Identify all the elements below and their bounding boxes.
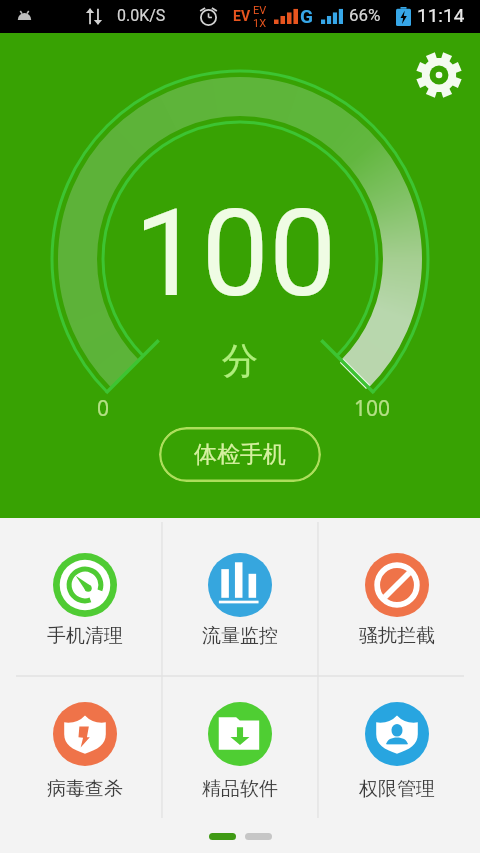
staticText: 流量监控 (202, 624, 278, 648)
staticText: EV (253, 4, 267, 17)
staticText: 分 (222, 338, 258, 383)
staticText: EV (233, 8, 251, 24)
staticText: 骚扰拦截 (359, 624, 435, 648)
staticText: 0.0K/S (117, 6, 166, 25)
staticText: 病毒查杀 (47, 777, 123, 801)
staticText: G (300, 5, 313, 27)
button[interactable]: 体检手机 (159, 427, 321, 482)
staticText: 0 (97, 394, 110, 420)
button[interactable]: 手机清理 (6, 539, 164, 659)
staticText: 精品软件 (202, 777, 278, 801)
staticText: 体检手机 (194, 440, 286, 469)
staticText: 11:14 (417, 4, 465, 26)
staticText: 100 (134, 184, 337, 325)
staticText: 手机清理 (47, 624, 123, 648)
staticText: 1X (253, 17, 267, 30)
button[interactable]: 权限管理 (318, 688, 476, 808)
button[interactable]: 流量监控 (161, 539, 319, 659)
staticText: 66% (349, 5, 381, 25)
button[interactable]: 骚扰拦截 (318, 539, 476, 659)
staticText: 权限管理 (359, 777, 435, 801)
button[interactable]: Settings (416, 52, 462, 98)
button[interactable]: 精品软件 (161, 688, 319, 808)
staticText: 100 (354, 394, 391, 420)
button[interactable]: 病毒查杀 (6, 688, 164, 808)
